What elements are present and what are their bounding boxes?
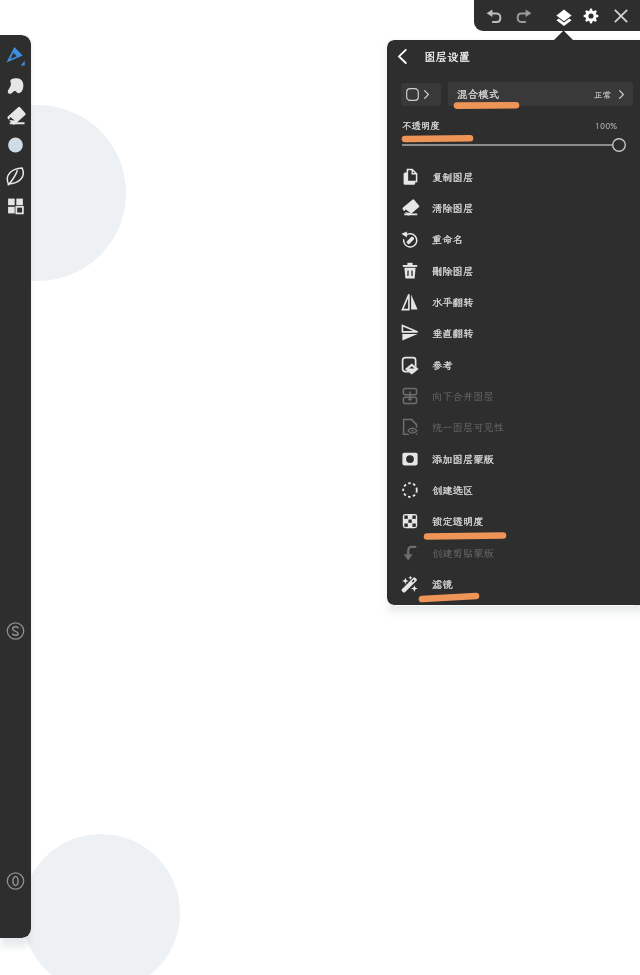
button[interactable]: Redo — [509, 0, 537, 31]
staticText: 复制图层 — [432, 170, 474, 184]
staticText: 水平翻转 — [432, 295, 474, 309]
button[interactable]: Layers — [550, 0, 578, 31]
button[interactable]: 创建剪贴蒙版 — [387, 537, 640, 568]
button[interactable]: 添加图层蒙版 — [387, 443, 640, 474]
button[interactable]: 创建选区 — [387, 474, 640, 505]
button[interactable]: 统一图层可见性 — [387, 411, 640, 442]
button[interactable]: Eraser — [0, 103, 31, 129]
button[interactable]: 参考 — [387, 349, 640, 380]
button[interactable]: Tools — [0, 193, 31, 219]
button[interactable]: 混合模式 — [448, 82, 633, 106]
staticText: 清除图层 — [432, 201, 474, 215]
staticText: 锁定透明度 — [432, 514, 484, 528]
staticText: 统一图层可见性 — [432, 420, 505, 434]
button[interactable]: Color — [0, 132, 31, 158]
staticText: 图层设置 — [424, 49, 470, 64]
button[interactable]: Opacity — [0, 868, 31, 894]
button[interactable]: 复制图层 — [387, 161, 640, 192]
staticText: 向下合并图层 — [432, 389, 494, 403]
staticText: 重命名 — [432, 232, 463, 246]
staticText: 滤镜 — [432, 577, 453, 591]
staticText: 添加图层蒙版 — [432, 452, 494, 466]
button[interactable]: Size — [0, 618, 31, 644]
staticText: 100% — [595, 120, 618, 131]
button[interactable]: Shape — [0, 163, 31, 189]
button[interactable]: Close — [607, 0, 635, 31]
button[interactable]: 垂直翻转 — [387, 317, 640, 348]
staticText: 不透明度 — [402, 119, 441, 132]
staticText: 参考 — [432, 358, 453, 372]
staticText: 删除图层 — [432, 264, 474, 278]
button[interactable]: Opacity slider — [400, 136, 626, 154]
staticText: 正常 — [594, 89, 612, 100]
button[interactable]: Undo — [481, 0, 509, 31]
staticText: 创建选区 — [432, 483, 474, 497]
button[interactable]: 水平翻转 — [387, 286, 640, 317]
button[interactable]: 滤镜 — [387, 568, 640, 599]
button[interactable]: Smudge — [0, 73, 31, 99]
button[interactable]: 清除图层 — [387, 192, 640, 223]
button[interactable]: Back — [387, 40, 417, 74]
button[interactable]: 向下合并图层 — [387, 380, 640, 411]
staticText: 创建剪贴蒙版 — [432, 546, 494, 560]
button[interactable]: 重命名 — [387, 223, 640, 254]
staticText: 混合模式 — [457, 87, 499, 101]
button[interactable]: Layer thumbnail — [401, 83, 441, 106]
button[interactable]: Brush — [0, 43, 31, 69]
staticText: 垂直翻转 — [432, 326, 474, 340]
button[interactable]: 锁定透明度 — [387, 505, 640, 536]
button[interactable]: 删除图层 — [387, 255, 640, 286]
button[interactable]: Settings — [577, 0, 605, 31]
